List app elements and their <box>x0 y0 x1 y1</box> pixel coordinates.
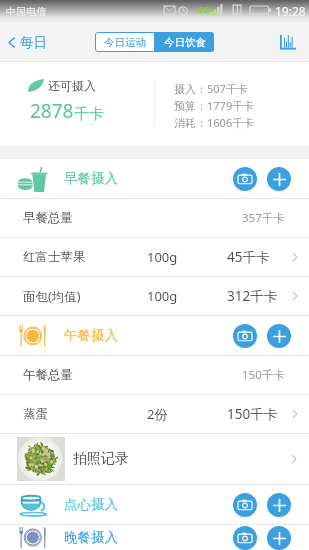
staticText: 357千卡 <box>242 210 285 226</box>
button[interactable]: 今日运动 <box>95 32 155 52</box>
staticText: 红富士苹果 <box>23 249 86 265</box>
staticText: 晚餐摄入 <box>64 529 118 546</box>
button[interactable]: 午餐总量 <box>0 356 309 394</box>
staticText: 午餐摄入 <box>64 327 118 344</box>
button[interactable]: Add <box>267 493 291 517</box>
staticText: 点心摄入 <box>64 496 118 513</box>
button[interactable]: Statistics <box>279 33 309 51</box>
staticText: 预算：1779千卡 <box>174 98 255 113</box>
button[interactable]: Camera <box>233 167 257 191</box>
button[interactable]: 蒸蛋 <box>0 395 309 433</box>
staticText: 中国电信 <box>6 5 46 18</box>
button[interactable]: 早餐总量 <box>0 199 309 237</box>
staticText: 150千卡 <box>242 367 285 383</box>
button[interactable]: Camera <box>233 526 257 550</box>
staticText: 午餐总量 <box>23 367 73 383</box>
button[interactable]: Add <box>267 526 291 550</box>
staticText: 早餐总量 <box>23 210 73 226</box>
staticText: 45千卡 <box>227 248 270 266</box>
staticText: 每日 <box>20 34 47 51</box>
staticText: 还可摄入 <box>48 78 96 93</box>
staticText: 拍照记录 <box>73 450 129 468</box>
button[interactable]: Add <box>267 324 291 348</box>
staticText: 早餐摄入 <box>64 170 118 187</box>
staticText: 今日饮食 <box>164 36 206 49</box>
staticText: 19:28 <box>275 3 306 19</box>
button[interactable]: Camera <box>233 493 257 517</box>
button[interactable]: Camera <box>233 324 257 348</box>
staticText: 千卡 <box>74 105 104 124</box>
staticText: 312千卡 <box>227 287 278 305</box>
staticText: 4G <box>197 3 210 16</box>
staticText: 150千卡 <box>227 405 278 423</box>
button[interactable]: 红富士苹果 <box>0 238 309 276</box>
staticText: 摄入：507千卡 <box>174 81 248 96</box>
button[interactable]: 拍照记录 <box>0 434 309 484</box>
staticText: 消耗：1606千卡 <box>174 115 255 130</box>
staticText: 面包(均值) <box>23 288 81 305</box>
staticText: 100g <box>147 287 178 305</box>
staticText: 2878 <box>30 98 74 124</box>
button[interactable]: 今日饮食 <box>155 32 214 52</box>
staticText: 100g <box>147 248 178 266</box>
button[interactable]: 面包(均值) <box>0 277 309 315</box>
staticText: 蒸蛋 <box>23 406 48 422</box>
staticText: 2份 <box>147 405 168 423</box>
button[interactable]: Add <box>267 167 291 191</box>
staticText: 今日运动 <box>104 36 146 49</box>
button[interactable]: 每日 <box>0 34 55 51</box>
